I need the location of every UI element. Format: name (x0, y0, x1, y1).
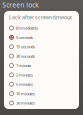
button[interactable]: 2 minutes (4, 70, 79, 80)
button[interactable]: 10 minutes (4, 89, 79, 98)
staticText: 5 minutes (16, 82, 33, 87)
staticText: 2 minutes (16, 72, 33, 77)
button[interactable]: 30 minutes (4, 98, 79, 108)
staticText: 30 minutes (16, 100, 35, 106)
staticText: Lock after screen timeout (9, 14, 72, 21)
staticText: Screen lock (2, 0, 39, 9)
button[interactable]: 1 minute (4, 61, 79, 70)
button[interactable]: 5 seconds (4, 33, 79, 42)
staticText: 5 seconds (16, 35, 33, 40)
button[interactable]: 5 minutes (4, 79, 79, 89)
staticText: 30 seconds (16, 53, 35, 59)
staticText: 1 minute (16, 63, 31, 68)
staticText: 15 seconds (16, 44, 35, 49)
button[interactable]: Immediately (4, 23, 79, 33)
button[interactable]: 15 seconds (4, 42, 79, 51)
staticText: Immediately (16, 25, 38, 31)
button[interactable]: 30 seconds (4, 51, 79, 61)
staticText: 10 minutes (16, 91, 35, 96)
